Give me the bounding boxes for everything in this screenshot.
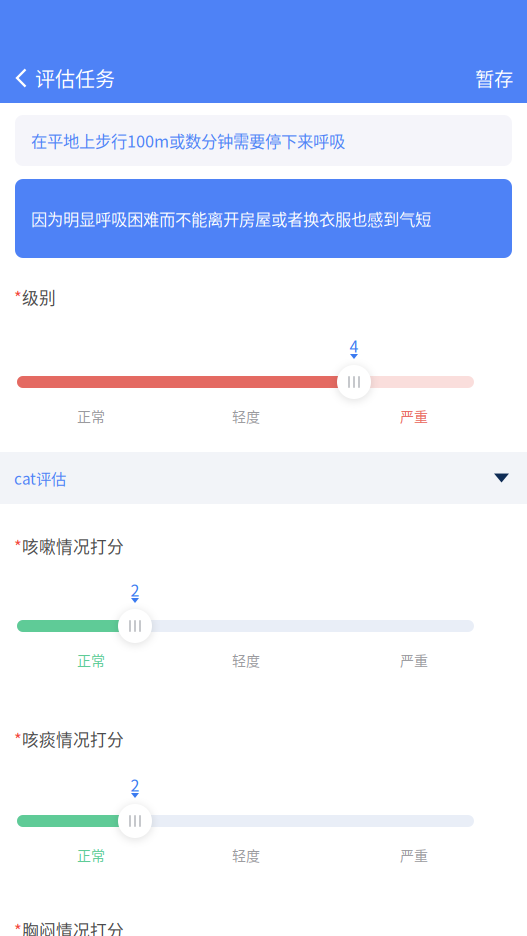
staticText: 轻度: [232, 406, 260, 426]
staticText: 暂存: [475, 64, 513, 92]
staticText: 严重: [400, 650, 428, 670]
button[interactable]: 在平地上步行100m或数分钟需要停下来呼吸: [15, 115, 512, 166]
staticText: 咳嗽情况打分: [22, 534, 124, 558]
staticText: 2: [130, 578, 139, 601]
button[interactable]: cat评估: [0, 452, 527, 504]
staticText: cat评估: [14, 467, 66, 489]
staticText: *: [14, 534, 22, 558]
staticText: *: [14, 918, 22, 936]
staticText: 严重: [400, 406, 428, 426]
staticText: 咳痰情况打分: [22, 727, 124, 751]
staticText: 级别: [22, 285, 56, 309]
staticText: 严重: [400, 845, 428, 865]
button[interactable]: 评估任务: [0, 53, 127, 103]
staticText: 正常: [77, 406, 105, 426]
staticText: 轻度: [232, 650, 260, 670]
staticText: 在平地上步行100m或数分钟需要停下来呼吸: [31, 129, 345, 152]
staticText: 评估任务: [35, 63, 115, 92]
staticText: *: [14, 285, 22, 309]
staticText: 胸闷情况打分: [22, 918, 124, 936]
button[interactable]: 因为明显呼吸困难而不能离开房屋或者换衣服也感到气短: [15, 179, 512, 258]
staticText: 因为明显呼吸困难而不能离开房屋或者换衣服也感到气短: [31, 207, 431, 230]
staticText: 2: [130, 773, 139, 796]
staticText: 4: [349, 334, 358, 357]
button[interactable]: 暂存: [461, 53, 527, 103]
staticText: 正常: [77, 650, 105, 670]
staticText: 轻度: [232, 845, 260, 865]
staticText: 正常: [77, 845, 105, 865]
staticText: *: [14, 727, 22, 751]
